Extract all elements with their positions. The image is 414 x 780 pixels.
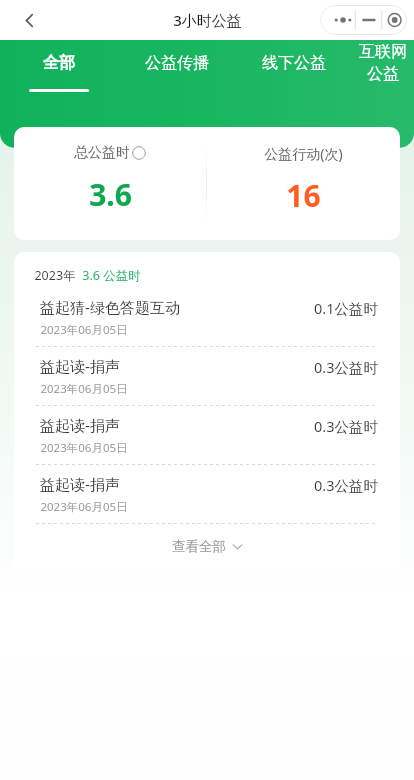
- staticText: 0.3公益时: [314, 357, 378, 377]
- button[interactable]: 查看全部: [14, 524, 400, 568]
- staticText: 全部: [43, 53, 75, 73]
- staticText: 益起读-捐声: [40, 356, 120, 376]
- staticText: 0.3公益时: [314, 416, 378, 436]
- button[interactable]: 益起读-捐声: [14, 347, 400, 405]
- button[interactable]: 全部: [0, 40, 118, 95]
- button[interactable]: 益起读-捐声: [14, 406, 400, 464]
- button[interactable]: 公益传播: [118, 40, 235, 95]
- staticText: 互联网公益: [352, 42, 414, 84]
- button[interactable]: 线下公益: [235, 40, 352, 95]
- staticText: 2023年06月05日: [40, 322, 128, 338]
- staticText: 益起读-捐声: [40, 474, 120, 494]
- staticText: 益起猜-绿色答题互动: [40, 297, 180, 317]
- staticText: 0.1公益时: [314, 298, 378, 318]
- button[interactable]: More options: [320, 5, 407, 35]
- staticText: 查看全部: [172, 538, 226, 555]
- staticText: 2023年06月05日: [40, 440, 128, 456]
- staticText: 公益传播: [145, 53, 209, 73]
- button[interactable]: 互联网公益: [352, 40, 414, 95]
- button[interactable]: 益起读-捐声: [14, 465, 400, 523]
- button[interactable]: 公益行动(次): [207, 127, 400, 240]
- staticText: 3.6 公益时: [82, 267, 141, 284]
- staticText: 16: [286, 175, 321, 216]
- button[interactable]: 益起猜-绿色答题互动: [14, 288, 400, 346]
- staticText: 公益行动(次): [264, 144, 343, 163]
- button[interactable]: Back: [10, 1, 48, 39]
- staticText: 益起读-捐声: [40, 415, 120, 435]
- staticText: 3小时公益: [173, 10, 242, 30]
- staticText: 3.6: [89, 174, 132, 215]
- staticText: 2023年: [34, 267, 76, 284]
- staticText: 2023年06月05日: [40, 381, 128, 397]
- staticText: 2023年06月05日: [40, 499, 128, 515]
- button[interactable]: 总公益时: [14, 127, 206, 240]
- staticText: 总公益时: [74, 144, 130, 162]
- staticText: 0.3公益时: [314, 475, 378, 495]
- staticText: 线下公益: [262, 53, 326, 73]
